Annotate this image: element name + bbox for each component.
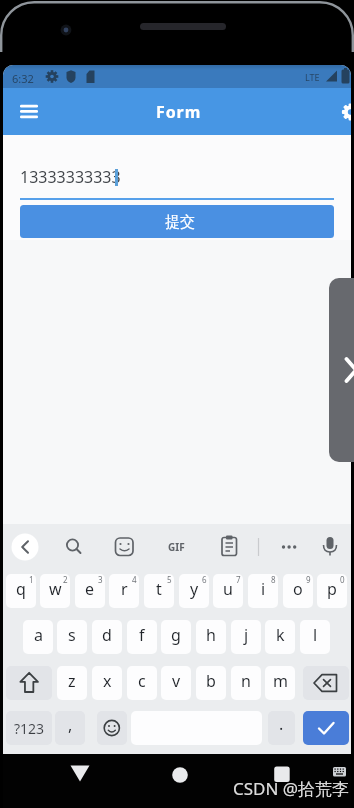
button[interactable]: i [248,574,278,608]
button[interactable] [303,666,349,700]
button[interactable] [303,711,349,745]
button[interactable] [313,533,347,561]
staticText: p [327,578,337,600]
staticText: x [103,670,112,692]
button[interactable]: o [283,574,313,608]
staticText: 6 [202,574,207,585]
staticText: s [68,624,76,646]
button[interactable] [267,759,297,789]
staticText: o [293,578,303,600]
button[interactable] [165,760,195,790]
staticText: g [171,624,181,646]
staticText: w [49,578,62,600]
button[interactable]: k [265,620,295,654]
button[interactable]: j [231,620,261,654]
staticText: 13333333333 [20,166,121,188]
staticText: z [68,670,76,692]
button[interactable] [108,533,141,561]
staticText: 提交 [165,213,195,232]
button[interactable] [329,278,354,462]
staticText: 6:32 [12,71,34,86]
staticText: n [241,670,251,692]
staticText: k [276,624,285,646]
button[interactable] [11,533,39,561]
button[interactable]: ?123 [6,711,52,745]
button[interactable]: e [75,574,105,608]
staticText: 7 [236,574,241,585]
button[interactable] [65,760,95,790]
staticText: . [279,713,284,735]
staticText: CSDN @拾荒李 [233,777,350,800]
staticText: b [206,670,216,692]
button[interactable]: , [55,711,85,745]
button[interactable]: s [57,620,87,654]
staticText: y [190,578,199,600]
button[interactable]: . [268,711,295,745]
button[interactable] [155,533,193,561]
button[interactable] [58,533,88,561]
button[interactable]: h [196,620,226,654]
staticText: u [223,578,233,600]
button[interactable]: l [300,620,330,654]
button[interactable]: y [179,574,209,608]
staticText: 1 [29,574,34,585]
staticText: Form [156,101,202,123]
button[interactable] [20,160,334,200]
staticText: e [85,578,95,600]
staticText: m [273,670,288,692]
button[interactable]: p [317,574,347,608]
staticText: c [138,670,146,692]
button[interactable]: n [231,666,261,700]
staticText: h [206,624,216,646]
staticText: , [68,714,73,736]
button[interactable]: w [40,574,70,608]
staticText: q [16,578,26,600]
button[interactable]: z [57,666,87,700]
button[interactable] [97,711,127,745]
staticText: 2 [63,574,68,585]
button[interactable] [15,97,45,127]
button[interactable]: f [127,620,157,654]
button[interactable]: v [161,666,191,700]
staticText: v [172,670,181,692]
staticText: 5 [167,574,172,585]
button[interactable] [6,666,52,700]
button[interactable]: g [161,620,191,654]
button[interactable]: d [92,620,122,654]
staticText: f [139,624,145,646]
staticText: 9 [306,574,311,585]
button[interactable]: u [213,574,243,608]
button[interactable]: b [196,666,226,700]
staticText: r [121,578,128,600]
staticText: 8 [271,574,276,585]
button[interactable]: x [92,666,122,700]
staticText: 3 [98,574,103,585]
staticText: l [313,624,318,646]
staticText: LTE [305,71,320,83]
staticText: ?123 [14,719,45,738]
staticText: d [102,624,112,646]
staticText: GIF [168,540,185,554]
button[interactable] [271,533,305,561]
button[interactable]: r [109,574,139,608]
staticText: a [34,624,43,646]
button[interactable]: 提交 [20,205,334,238]
button[interactable]: t [144,574,174,608]
button[interactable] [211,533,245,561]
button[interactable]: a [23,620,53,654]
staticText: 0 [340,574,345,585]
staticText: i [261,578,266,600]
button[interactable]: m [265,666,295,700]
staticText: j [244,624,249,646]
staticText: t [156,578,162,600]
button[interactable]: q [6,574,36,608]
button[interactable] [333,97,351,127]
button[interactable]: c [127,666,157,700]
staticText: 4 [132,574,137,585]
